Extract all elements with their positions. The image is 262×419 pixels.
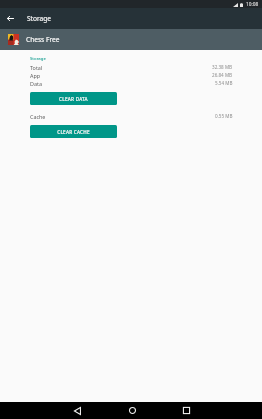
staticText: Data [30, 80, 42, 87]
button[interactable]: Back [57, 402, 97, 419]
button[interactable]: CLEAR DATA [30, 92, 117, 105]
staticText: 32.38 MB [212, 64, 233, 70]
staticText: CLEAR DATA [59, 96, 88, 102]
staticText: Chess Free [26, 35, 60, 44]
staticText: 5.54 MB [215, 80, 233, 86]
staticText: CLEAR CACHE [57, 129, 90, 135]
staticText: 0.55 MB [215, 113, 233, 119]
staticText: Cache [30, 113, 46, 120]
staticText: App [30, 72, 41, 79]
staticText: Storage [30, 55, 46, 61]
staticText: Total [30, 64, 43, 71]
button[interactable]: Recent apps [166, 402, 206, 419]
staticText: Storage [27, 14, 52, 23]
button[interactable]: Back [0, 8, 21, 29]
staticText: 10:08 [246, 1, 259, 8]
staticText: 26.84 MB [212, 72, 233, 78]
button[interactable]: Home [112, 402, 152, 419]
button[interactable]: CLEAR CACHE [30, 125, 117, 138]
